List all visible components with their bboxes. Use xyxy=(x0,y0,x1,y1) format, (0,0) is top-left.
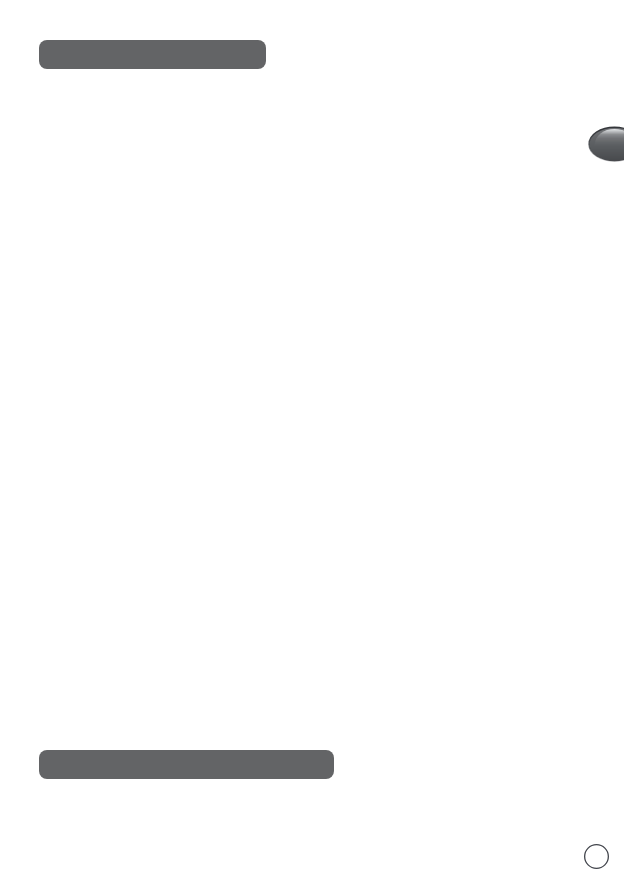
button[interactable]: Action xyxy=(589,126,624,162)
button[interactable]: Select xyxy=(584,844,609,869)
button[interactable]: Label xyxy=(39,750,334,779)
button[interactable]: Title xyxy=(39,40,266,69)
